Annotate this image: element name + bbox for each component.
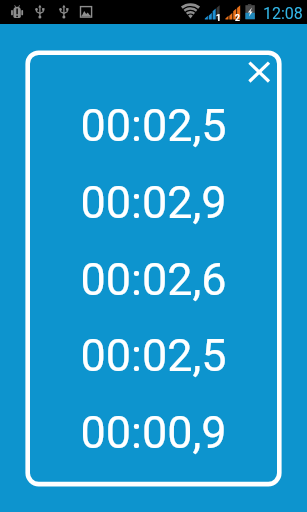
staticText: 12:08: [263, 4, 303, 23]
button[interactable]: 00:02,5: [0, 87, 307, 164]
staticText: 00:02,6: [80, 253, 227, 306]
button[interactable]: 00:02,5: [0, 317, 307, 394]
staticText: 00:02,5: [80, 329, 227, 382]
staticText: 1: [216, 13, 221, 23]
staticText: 00:02,5: [80, 99, 227, 152]
button[interactable]: 00:02,9: [0, 164, 307, 241]
button[interactable]: 00:00,9: [0, 394, 307, 471]
button[interactable]: Close: [243, 56, 275, 88]
button[interactable]: 00:02,6: [0, 241, 307, 318]
staticText: 00:00,9: [80, 406, 227, 459]
staticText: 2: [235, 13, 240, 23]
staticText: 00:02,9: [80, 176, 227, 229]
